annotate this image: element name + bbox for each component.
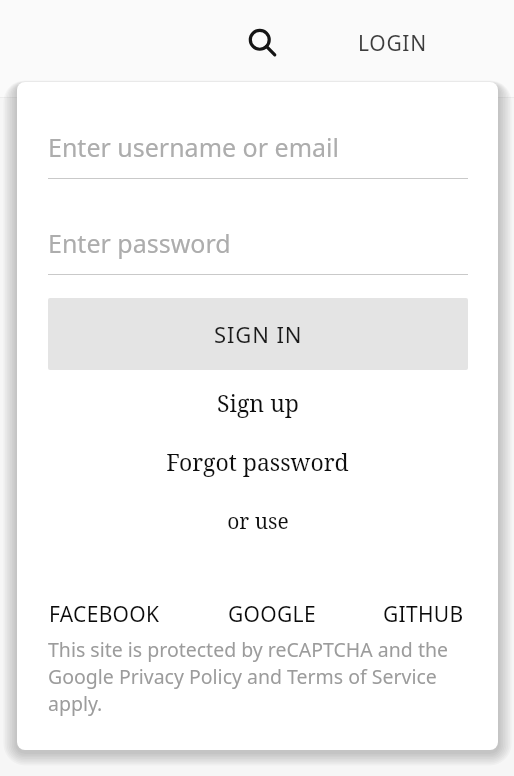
- button[interactable]: LOGIN: [336, 21, 448, 65]
- button[interactable]: Sign up: [205, 383, 311, 422]
- button[interactable]: SIGN IN: [48, 298, 468, 370]
- button[interactable]: Enter password: [48, 212, 468, 274]
- staticText: Forgot password: [166, 446, 349, 477]
- staticText: Enter password: [48, 226, 231, 260]
- button[interactable]: GITHUB: [382, 594, 465, 635]
- staticText: GITHUB: [383, 600, 464, 629]
- button[interactable]: FACEBOOK: [48, 594, 161, 635]
- staticText: LOGIN: [358, 29, 427, 58]
- staticText: Sign up: [217, 387, 299, 418]
- staticText: Enter username or email: [48, 130, 339, 164]
- staticText: FACEBOOK: [49, 600, 160, 629]
- staticText: GOOGLE: [228, 600, 316, 629]
- button[interactable]: Forgot password: [154, 442, 361, 481]
- button[interactable]: or use: [215, 503, 301, 540]
- button[interactable]: Enter username or email: [48, 116, 468, 178]
- staticText: or use: [227, 507, 289, 536]
- staticText: SIGN IN: [214, 319, 303, 349]
- button[interactable]: Search: [238, 19, 286, 67]
- button[interactable]: GOOGLE: [227, 594, 317, 635]
- staticText: This site is protected by reCAPTCHA and …: [48, 636, 458, 717]
